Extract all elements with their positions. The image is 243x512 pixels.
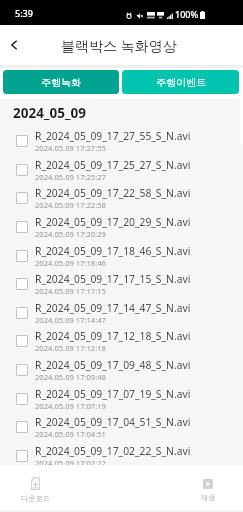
button[interactable]: 다운로드 [10, 465, 60, 510]
staticText: 2024.05.09 17:20:29 [35, 229, 106, 239]
staticText: R_2024_05_09_17_17_15_S_N.avi [35, 272, 191, 286]
staticText: 2024.05.09 17:27:55 [35, 143, 106, 153]
staticText: R_2024_05_09_17_02_22_S_N.avi [35, 444, 191, 458]
staticText: 2024.05.09 17:18:46 [35, 258, 106, 268]
button[interactable]: 주행이벤트 [122, 70, 239, 94]
staticText: 2024.05.09 17:14:47 [35, 315, 106, 325]
staticText: R_2024_05_09_17_07_19_S_N.avi [35, 387, 191, 401]
staticText: R_2024_05_09_17_04_51_S_N.avi [35, 415, 191, 429]
button[interactable]: R_2024_05_09_17_04_51_S_N.avi [16, 412, 243, 441]
staticText: 블랙박스 녹화영상 [61, 36, 177, 55]
staticText: 2024.05.09 17:12:18 [35, 343, 106, 353]
staticText: 주행이벤트 [156, 76, 206, 89]
staticText: 주행녹화 [41, 76, 81, 89]
staticText: R_2024_05_09_17_27_55_S_N.avi [35, 129, 191, 143]
button[interactable]: R_2024_05_09_17_14_47_S_N.avi [16, 298, 243, 327]
button[interactable]: R_2024_05_09_17_17_15_S_N.avi [16, 269, 243, 298]
staticText: 다운로드 [21, 494, 50, 503]
staticText: 2024.05.09 17:02:22 [35, 458, 106, 465]
staticText: R_2024_05_09_17_18_46_S_N.avi [35, 244, 191, 258]
staticText: 재생 [201, 493, 216, 502]
staticText: R_2024_05_09_17_12_18_S_N.avi [35, 329, 191, 343]
staticText: 2024.05.09 17:09:48 [35, 372, 106, 382]
button[interactable]: R_2024_05_09_17_25_27_S_N.avi [16, 155, 243, 184]
staticText: R_2024_05_09_17_20_29_S_N.avi [35, 215, 191, 229]
staticText: 100% [175, 8, 199, 20]
staticText: R_2024_05_09_17_25_27_S_N.avi [35, 158, 191, 172]
button[interactable]: 재생 [183, 465, 233, 510]
button[interactable]: Back [0, 25, 27, 65]
button[interactable]: R_2024_05_09_17_22_58_S_N.avi [16, 183, 243, 212]
button[interactable]: R_2024_05_09_17_27_55_S_N.avi [16, 126, 243, 155]
staticText: R_2024_05_09_17_14_47_S_N.avi [35, 301, 191, 315]
staticText: 2024.05.09 17:07:19 [35, 401, 106, 411]
button[interactable]: R_2024_05_09_17_12_18_S_N.avi [16, 326, 243, 355]
button[interactable]: R_2024_05_09_17_09_48_S_N.avi [16, 355, 243, 384]
staticText: 2024.05.09 17:17:15 [35, 286, 106, 296]
staticText: R_2024_05_09_17_22_58_S_N.avi [35, 186, 191, 200]
staticText: 2024_05_09 [13, 104, 86, 122]
staticText: 2024.05.09 17:04:51 [35, 429, 106, 439]
staticText: 5:39 [15, 7, 33, 19]
button[interactable]: R_2024_05_09_17_02_22_S_N.avi [16, 441, 243, 465]
button[interactable]: 주행녹화 [3, 70, 119, 94]
button[interactable]: R_2024_05_09_17_07_19_S_N.avi [16, 384, 243, 413]
button[interactable]: R_2024_05_09_17_20_29_S_N.avi [16, 212, 243, 241]
staticText: R_2024_05_09_17_09_48_S_N.avi [35, 358, 191, 372]
staticText: 2024.05.09 17:22:58 [35, 200, 106, 210]
staticText: 2024.05.09 17:25:27 [35, 172, 106, 182]
button[interactable]: R_2024_05_09_17_18_46_S_N.avi [16, 241, 243, 270]
